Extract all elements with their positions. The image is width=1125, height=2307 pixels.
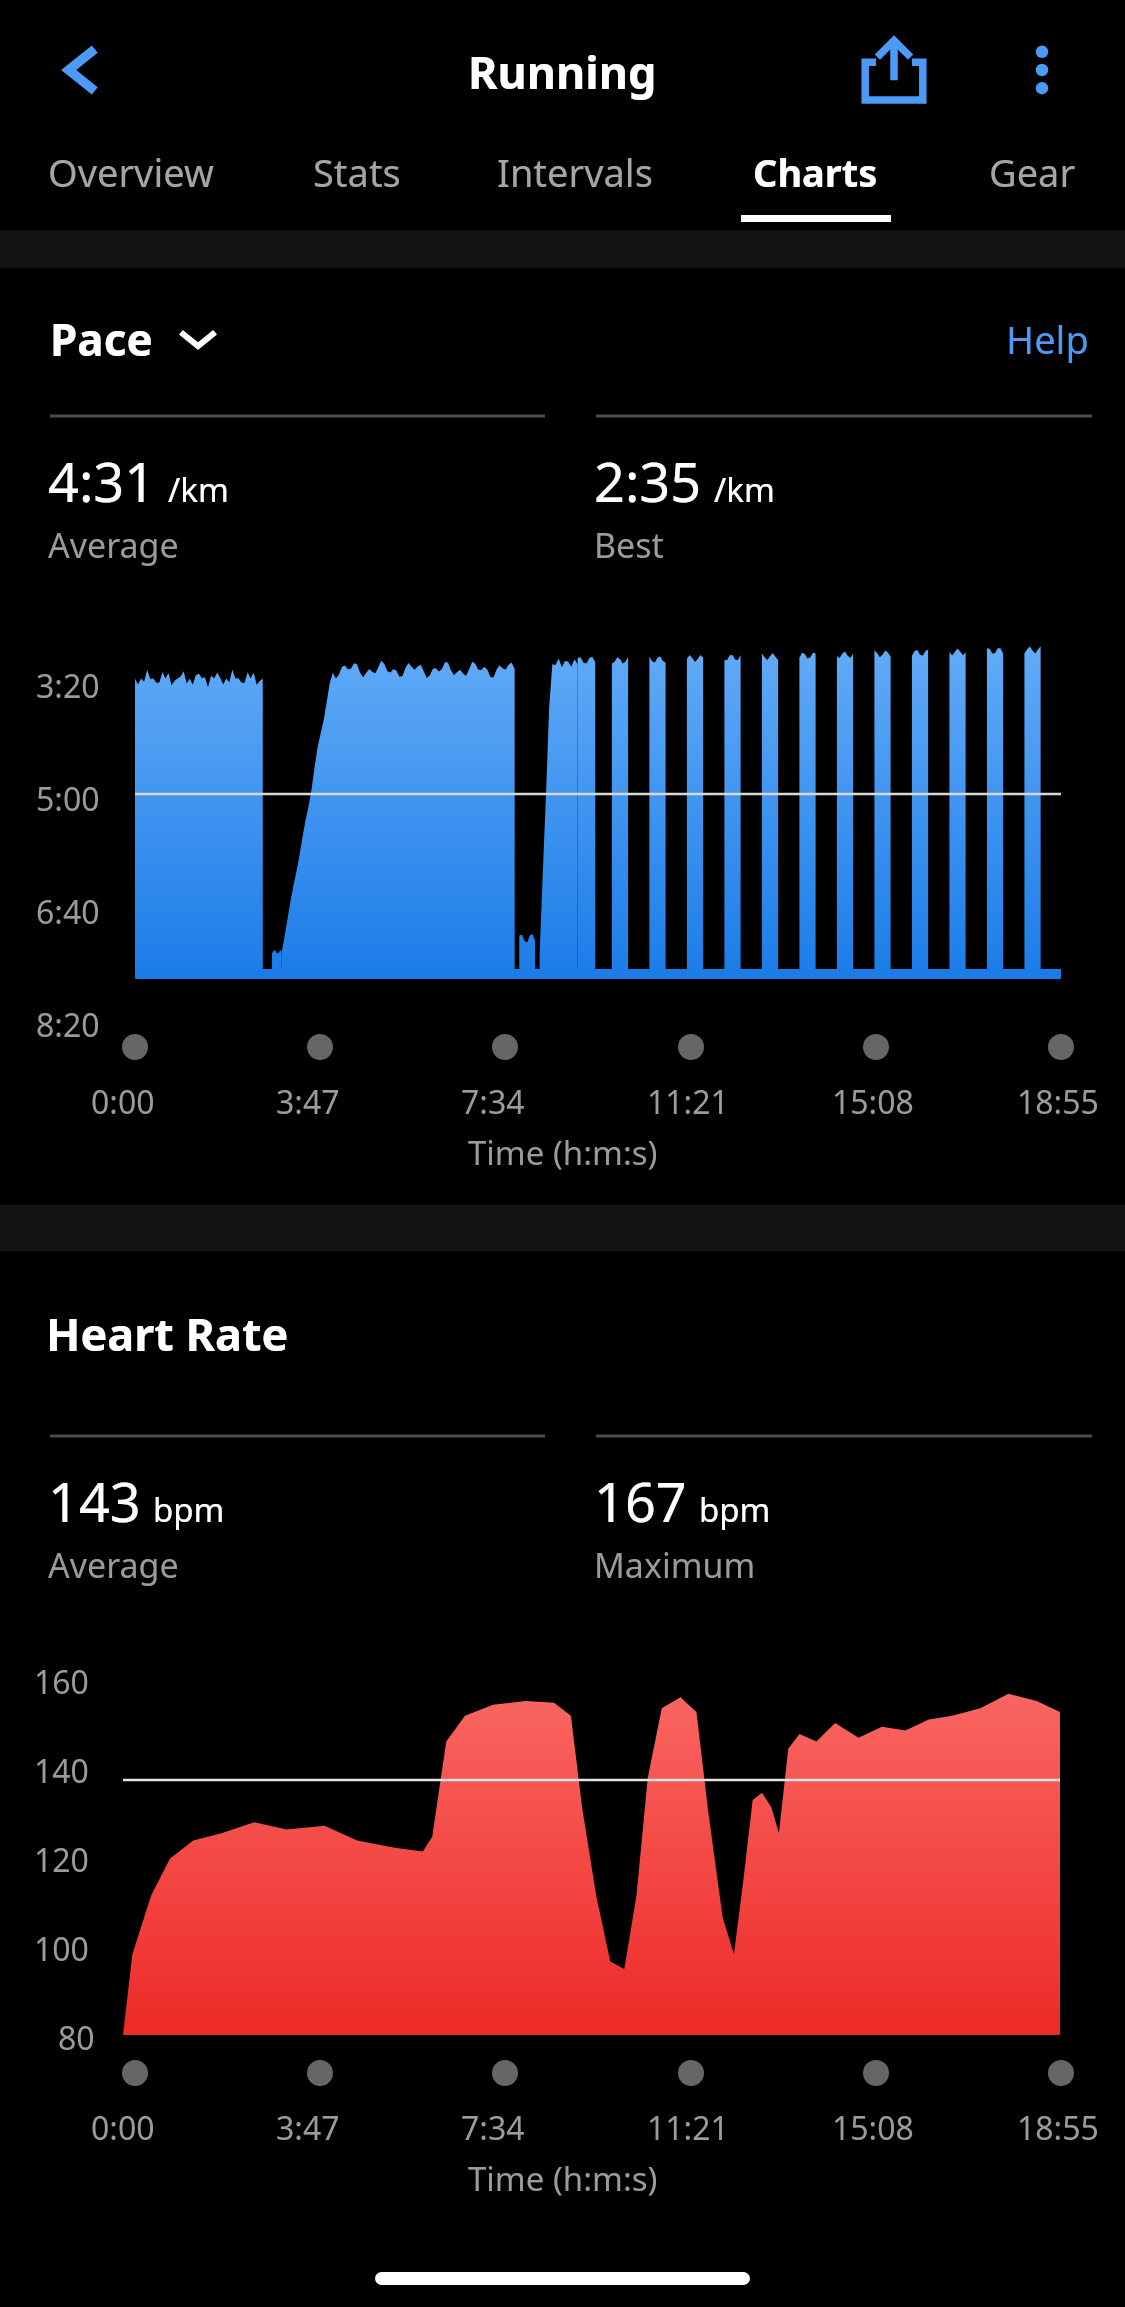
staticText: 3:47 bbox=[276, 2106, 340, 2150]
staticText: 15:08 bbox=[832, 1080, 914, 1124]
staticText: 8:20 bbox=[36, 1003, 100, 1047]
staticText: 5:00 bbox=[36, 777, 100, 821]
staticText: Pace bbox=[50, 309, 153, 369]
button[interactable]: Pace bbox=[50, 294, 217, 384]
staticText: 143 bbox=[48, 1464, 141, 1538]
staticText: 0:00 bbox=[91, 1080, 155, 1124]
staticText: 18:55 bbox=[1017, 2106, 1099, 2150]
staticText: Stats bbox=[313, 146, 401, 198]
staticText: bpm bbox=[699, 1487, 771, 1532]
staticText: /km bbox=[168, 467, 229, 512]
staticText: 7:34 bbox=[461, 2106, 525, 2150]
staticText: 4:31 bbox=[48, 444, 156, 518]
staticText: Best bbox=[594, 522, 664, 568]
staticText: 11:21 bbox=[647, 2106, 729, 2150]
staticText: Charts bbox=[753, 146, 878, 198]
button[interactable]: Charts bbox=[723, 140, 908, 230]
staticText: Time (h:m:s) bbox=[468, 1130, 658, 1175]
staticText: 3:20 bbox=[36, 664, 100, 708]
staticText: 6:40 bbox=[36, 890, 100, 934]
button[interactable]: Share bbox=[841, 17, 947, 123]
staticText: Average bbox=[48, 1542, 179, 1588]
staticText: 15:08 bbox=[832, 2106, 914, 2150]
staticText: 100 bbox=[34, 1927, 89, 1971]
button[interactable]: Overview bbox=[16, 140, 246, 230]
staticText: 80 bbox=[58, 2016, 95, 2060]
staticText: 0:00 bbox=[91, 2106, 155, 2150]
staticText: Average bbox=[48, 522, 179, 568]
staticText: Help bbox=[1006, 313, 1089, 365]
staticText: 2:35 bbox=[594, 444, 702, 518]
staticText: Overview bbox=[48, 146, 214, 198]
button[interactable]: Stats bbox=[277, 140, 437, 230]
button[interactable]: More options bbox=[993, 21, 1091, 119]
staticText: 140 bbox=[34, 1749, 89, 1793]
button[interactable]: Gear bbox=[957, 140, 1107, 230]
staticText: 167 bbox=[594, 1464, 687, 1538]
button[interactable]: Back bbox=[28, 16, 136, 124]
staticText: /km bbox=[714, 467, 775, 512]
staticText: 7:34 bbox=[461, 1080, 525, 1124]
staticText: Heart Rate bbox=[46, 1303, 289, 1364]
staticText: bpm bbox=[153, 1487, 225, 1532]
staticText: 3:47 bbox=[276, 1080, 340, 1124]
staticText: 11:21 bbox=[647, 1080, 729, 1124]
button[interactable]: Help bbox=[1006, 313, 1089, 365]
staticText: 120 bbox=[34, 1838, 89, 1882]
staticText: 160 bbox=[34, 1660, 89, 1704]
staticText: Running bbox=[468, 41, 657, 102]
staticText: Intervals bbox=[497, 146, 653, 198]
staticText: 18:55 bbox=[1017, 1080, 1099, 1124]
staticText: Gear bbox=[989, 146, 1076, 198]
button[interactable]: Intervals bbox=[462, 140, 687, 230]
staticText: Maximum bbox=[594, 1542, 756, 1588]
staticText: Time (h:m:s) bbox=[468, 2156, 658, 2201]
